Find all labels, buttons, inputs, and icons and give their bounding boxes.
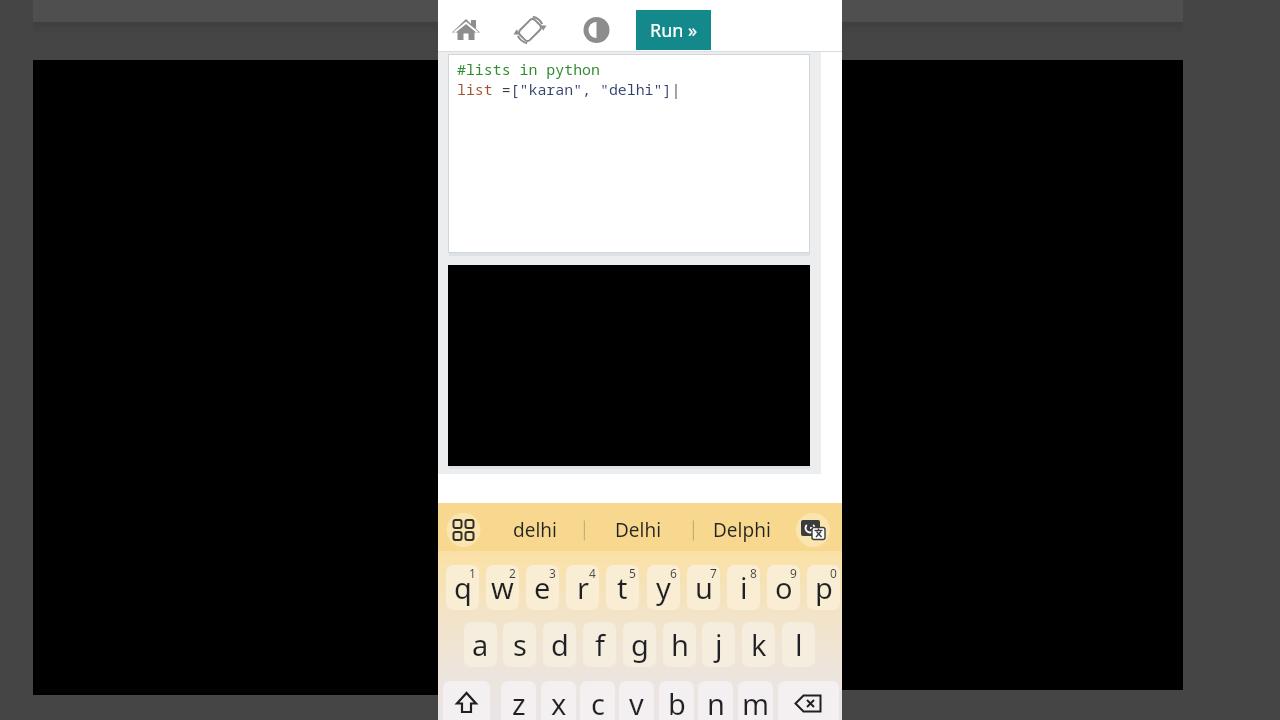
staticText: a — [472, 625, 489, 664]
staticText: v — [629, 684, 644, 720]
button[interactable]: f — [583, 622, 616, 667]
button[interactable]: c — [580, 681, 615, 720]
button[interactable]: l — [782, 622, 815, 667]
button[interactable] — [446, 513, 481, 548]
staticText: 0 — [830, 565, 837, 581]
staticText: 4 — [589, 565, 596, 581]
button[interactable]: w — [486, 565, 519, 610]
button[interactable]: t — [606, 565, 639, 610]
staticText: q — [454, 568, 472, 607]
button[interactable]: o — [767, 565, 800, 610]
button[interactable]: g — [623, 622, 656, 667]
staticText: delhi — [513, 517, 557, 543]
staticText: 5 — [629, 565, 636, 581]
staticText: i — [740, 568, 748, 607]
staticText: l — [795, 625, 803, 664]
button[interactable]: delhi — [490, 511, 580, 549]
button[interactable]: i — [727, 565, 760, 610]
button[interactable]: x — [541, 681, 576, 720]
button[interactable]: m — [738, 681, 773, 720]
staticText: x — [551, 684, 567, 720]
button[interactable]: v — [619, 681, 654, 720]
staticText: y — [656, 568, 671, 607]
staticText: j — [715, 625, 723, 664]
button[interactable]: k — [742, 622, 775, 667]
staticText: t — [617, 568, 628, 607]
staticText: h — [671, 625, 689, 664]
staticText: Delhi — [615, 517, 662, 543]
button[interactable]: u — [687, 565, 720, 610]
button[interactable] — [795, 513, 830, 548]
button[interactable] — [443, 681, 490, 720]
button[interactable] — [578, 8, 615, 48]
staticText: g — [631, 625, 649, 664]
staticText: f — [595, 625, 605, 664]
staticText: p — [815, 568, 833, 607]
staticText: o — [775, 568, 793, 607]
staticText: w — [491, 568, 514, 607]
staticText: Delphi — [713, 517, 771, 543]
staticText: s — [513, 625, 527, 664]
button[interactable]: p — [807, 565, 840, 610]
staticText: 7 — [710, 565, 717, 581]
button[interactable] — [448, 8, 484, 48]
button[interactable]: d — [543, 622, 576, 667]
staticText: 9 — [790, 565, 797, 581]
staticText: z — [512, 684, 526, 720]
staticText: k — [751, 625, 767, 664]
staticText: d — [551, 625, 569, 664]
button[interactable]: n — [698, 681, 733, 720]
button[interactable]: y — [647, 565, 680, 610]
button[interactable]: b — [659, 681, 694, 720]
button[interactable]: q — [446, 565, 479, 610]
staticText: n — [707, 684, 725, 720]
staticText: 2 — [509, 565, 516, 581]
staticText: Run » — [650, 18, 698, 43]
staticText: 1 — [469, 565, 476, 581]
staticText: e — [534, 568, 551, 607]
button[interactable]: e — [526, 565, 559, 610]
staticText: r — [577, 568, 589, 607]
button[interactable]: a — [464, 622, 497, 667]
button[interactable]: h — [663, 622, 696, 667]
staticText: list =["karan", "delhi"]| — [457, 79, 681, 99]
staticText: 6 — [670, 565, 677, 581]
button[interactable]: Run » — [636, 10, 711, 50]
button[interactable]: Delhi — [593, 511, 683, 549]
button[interactable]: s — [503, 622, 536, 667]
button[interactable]: z — [501, 681, 536, 720]
staticText: b — [668, 684, 686, 720]
staticText: u — [695, 568, 713, 607]
button[interactable]: j — [702, 622, 735, 667]
staticText: c — [591, 684, 605, 720]
button[interactable]: r — [566, 565, 599, 610]
staticText: 3 — [549, 565, 556, 581]
staticText: #lists in python — [457, 59, 600, 79]
staticText: m — [742, 684, 770, 720]
button[interactable] — [778, 681, 839, 720]
button[interactable] — [512, 8, 548, 48]
button[interactable]: Delphi — [697, 511, 787, 549]
staticText: 8 — [750, 565, 757, 581]
